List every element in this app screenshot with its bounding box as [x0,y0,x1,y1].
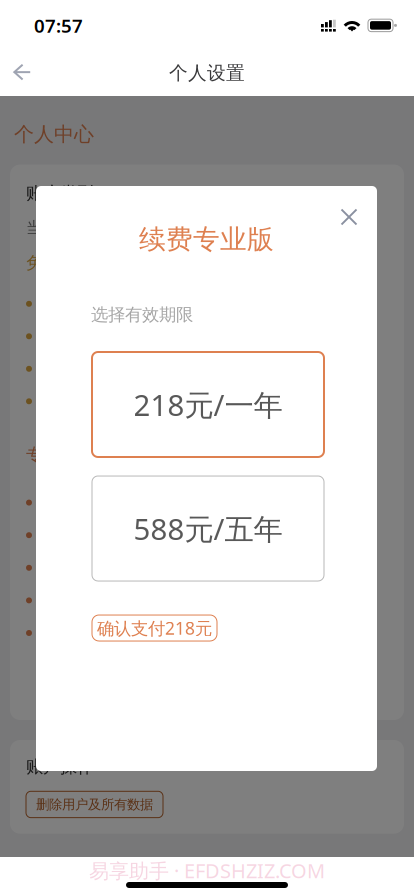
button[interactable]: 确认支付218元 [92,615,217,641]
staticText: 选择有效期限 [91,304,193,325]
staticText: 个人中心 [14,122,94,147]
staticText: 基础数据统计 [41,391,137,411]
staticText: 个人设置 [169,61,245,84]
staticText: 免费版 [26,252,77,274]
staticText: 每月 100 条记录 [41,358,156,379]
staticText: 无限记账条数 [41,558,137,578]
staticText: 无限账本数量 [41,525,137,545]
staticText: 588元/五年 [133,509,282,548]
staticText: 续费专业版 [139,223,274,256]
staticText: 专业版 [26,444,77,466]
button[interactable]: 588元/五年 [92,476,324,581]
button[interactable]: Close [330,198,368,236]
staticText: 易享助手 · EFDSHZIZ.COM [89,857,325,884]
button[interactable]: Back [0,50,44,94]
staticText: 当前版本：免费版 [26,218,154,238]
staticText: 218元/一年 [133,385,282,424]
button[interactable]: 删除用户及所有数据 [26,791,163,818]
staticText: 删除用户及所有数据 [36,796,153,813]
staticText: 基础记账功能 [41,294,137,314]
staticText: 07:57 [34,13,83,38]
button[interactable]: 218元/一年 [92,352,324,457]
staticText: 账户操作 [26,756,94,777]
staticText: 专属客服支持 [41,623,137,643]
staticText: 全部高级功能 [41,493,137,512]
staticText: 账户类型 [26,183,94,204]
staticText: 确认支付218元 [97,616,212,639]
